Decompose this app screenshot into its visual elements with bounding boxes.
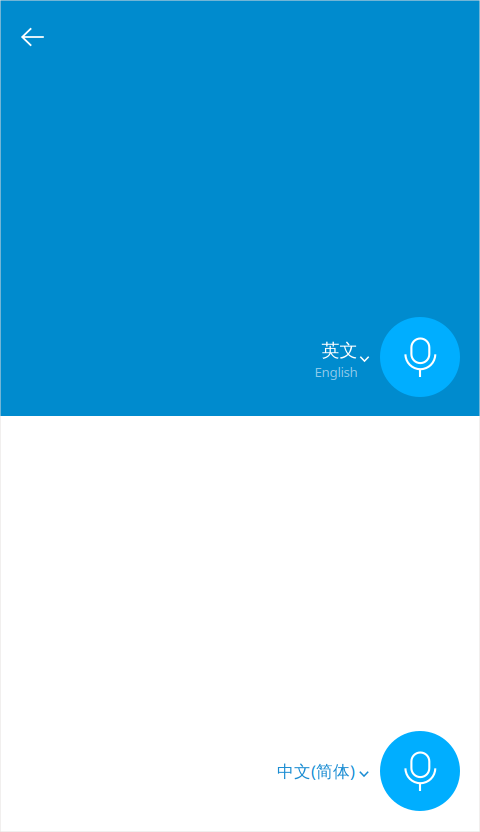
- staticText: English: [314, 363, 357, 381]
- button[interactable]: Speak: [380, 317, 460, 397]
- button[interactable]: Speak: [380, 731, 460, 811]
- staticText: 中文(简体): [277, 760, 355, 782]
- button[interactable]: 英文: [314, 336, 369, 378]
- button[interactable]: Back: [11, 15, 55, 59]
- button[interactable]: 中文(简体): [277, 760, 369, 782]
- staticText: 英文: [321, 339, 357, 362]
